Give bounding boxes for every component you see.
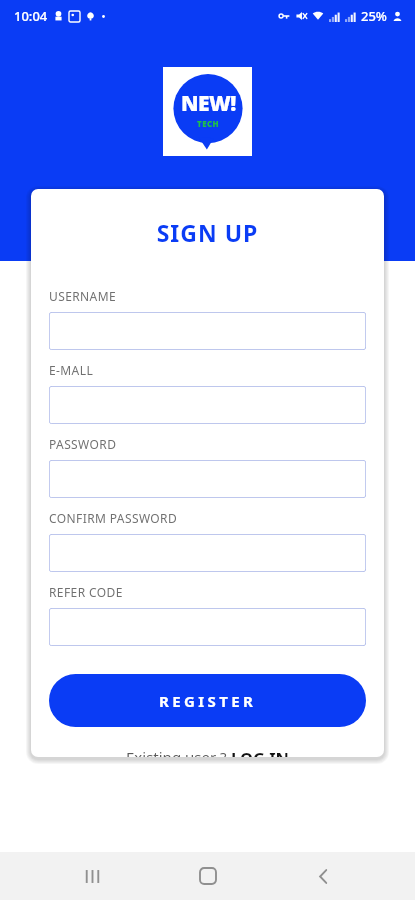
staticText: REGISTER (159, 691, 257, 711)
staticText: NEW! (181, 89, 236, 118)
staticText: E-MALL (49, 362, 94, 378)
staticText: 25% (361, 7, 387, 25)
button[interactable]: REGISTER (49, 674, 366, 727)
staticText: Existing user ? (126, 747, 231, 757)
button[interactable]: Home (184, 852, 232, 900)
staticText: PASSWORD (49, 436, 117, 452)
button[interactable] (49, 460, 366, 498)
button[interactable] (49, 386, 366, 424)
staticText: 10:04 (14, 7, 48, 25)
staticText: USERNAME (49, 288, 117, 304)
staticText: SIGN UP (31, 217, 384, 248)
button[interactable] (49, 608, 366, 646)
button[interactable]: Back (299, 852, 347, 900)
button[interactable] (49, 534, 366, 572)
staticText: TECH (197, 118, 220, 129)
staticText: REFER CODE (49, 584, 123, 600)
button[interactable]: Existing user ? (49, 747, 366, 757)
staticText: CONFIRM PASSWORD (49, 510, 178, 526)
button[interactable]: Recent apps (68, 852, 116, 900)
button[interactable] (49, 312, 366, 350)
staticText: LOG IN (231, 747, 290, 757)
